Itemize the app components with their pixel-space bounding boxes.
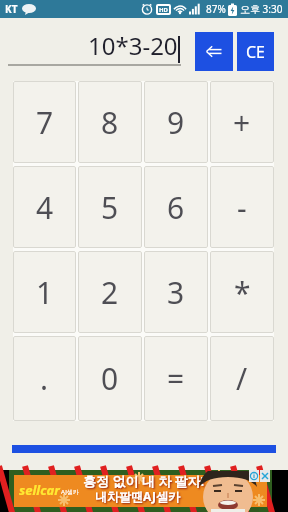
button[interactable]: = bbox=[144, 336, 208, 421]
staticText: + bbox=[233, 102, 251, 143]
staticText: KT bbox=[5, 2, 18, 16]
staticText: 0 bbox=[101, 358, 119, 399]
button[interactable]: sellcar bbox=[9, 470, 272, 512]
staticText: 10*3-20 bbox=[88, 29, 178, 62]
button[interactable]: 2 bbox=[78, 251, 142, 333]
staticText: 2 bbox=[101, 272, 119, 313]
button[interactable]: 5 bbox=[78, 166, 142, 248]
button[interactable]: + bbox=[210, 81, 274, 163]
button[interactable]: CE bbox=[237, 32, 274, 71]
button[interactable]: 6 bbox=[144, 166, 208, 248]
button[interactable]: * bbox=[210, 251, 274, 333]
staticText: HD bbox=[159, 6, 168, 14]
staticText: 내차팔땐AJ셀카 bbox=[95, 488, 180, 504]
button[interactable] bbox=[195, 32, 233, 71]
staticText: = bbox=[167, 358, 185, 399]
staticText: * bbox=[234, 272, 251, 313]
staticText: 6 bbox=[167, 187, 185, 228]
button[interactable]: 3 bbox=[144, 251, 208, 333]
button[interactable]: / bbox=[210, 336, 274, 421]
staticText: 1 bbox=[36, 272, 54, 313]
staticText: 5 bbox=[101, 187, 119, 228]
button[interactable]: . bbox=[13, 336, 76, 421]
button[interactable]: 8 bbox=[78, 81, 142, 163]
button[interactable]: 0 bbox=[78, 336, 142, 421]
staticText: 오후 3:30 bbox=[240, 2, 283, 16]
staticText: AJ셀카 bbox=[61, 488, 79, 496]
staticText: CE bbox=[246, 41, 266, 63]
button[interactable]: 7 bbox=[13, 81, 76, 163]
button[interactable]: 4 bbox=[13, 166, 76, 248]
staticText: 8 bbox=[101, 102, 119, 143]
staticText: / bbox=[236, 358, 248, 399]
staticText: 3 bbox=[167, 272, 185, 313]
staticText: . bbox=[40, 358, 49, 399]
button[interactable]: 1 bbox=[13, 251, 76, 333]
staticText: 87% bbox=[206, 2, 226, 16]
button[interactable]: - bbox=[210, 166, 274, 248]
staticText: 7 bbox=[36, 102, 54, 143]
staticText: 흥정 없이 내 차 팔자! bbox=[83, 472, 205, 490]
staticText: sellcar bbox=[19, 481, 60, 499]
button[interactable]: 9 bbox=[144, 81, 208, 163]
staticText: 4 bbox=[36, 187, 54, 228]
staticText: - bbox=[237, 187, 247, 228]
staticText: 9 bbox=[167, 102, 185, 143]
